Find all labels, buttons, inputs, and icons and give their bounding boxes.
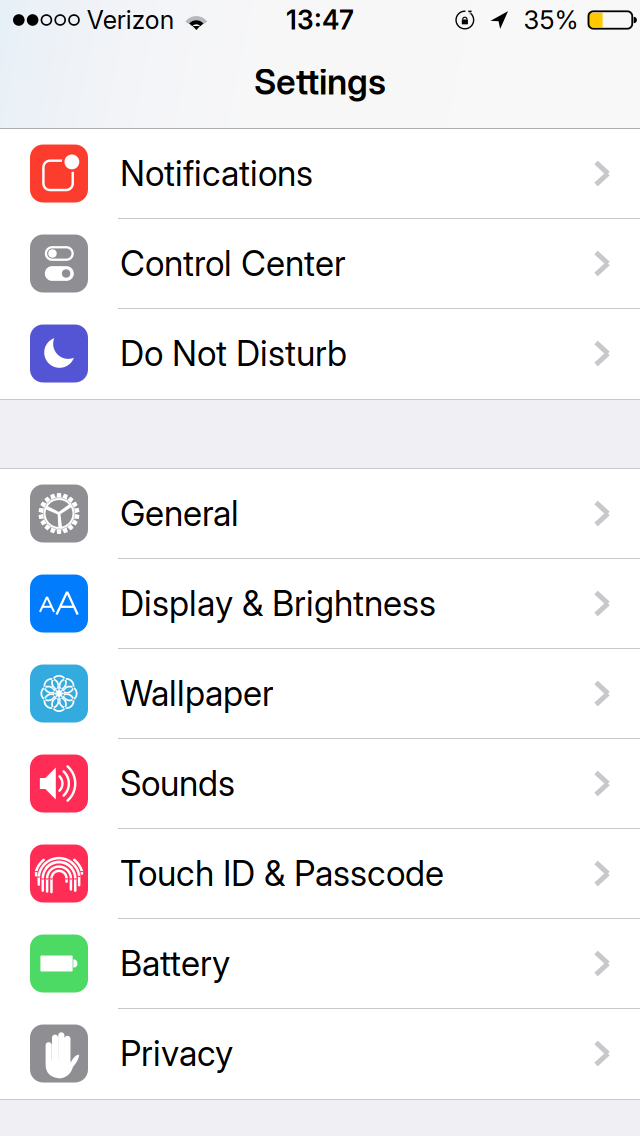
staticText: Privacy — [120, 1033, 233, 1074]
button[interactable]: Privacy — [0, 1009, 640, 1099]
staticText: Wallpaper — [120, 673, 274, 714]
staticText: 13:47 — [286, 4, 354, 36]
staticText: Verizon — [87, 5, 175, 35]
button[interactable]: Control Center — [0, 219, 640, 309]
staticText: Touch ID & Passcode — [120, 853, 444, 894]
button[interactable]: Sounds — [0, 739, 640, 829]
staticText: Control Center — [120, 243, 346, 284]
button[interactable]: Do Not Disturb — [0, 309, 640, 399]
staticText: Notifications — [120, 153, 313, 194]
button[interactable]: Display & Brightness — [0, 559, 640, 649]
staticText: Do Not Disturb — [120, 333, 347, 374]
button[interactable]: Touch ID & Passcode — [0, 829, 640, 919]
button[interactable]: General — [0, 469, 640, 559]
staticText: Settings — [254, 61, 386, 103]
button[interactable]: Battery — [0, 919, 640, 1009]
staticText: Display & Brightness — [120, 583, 436, 624]
button[interactable]: Notifications — [0, 129, 640, 219]
button[interactable]: Wallpaper — [0, 649, 640, 739]
staticText: 35% — [524, 4, 579, 35]
staticText: General — [120, 493, 239, 534]
staticText: Battery — [120, 943, 230, 984]
staticText: Sounds — [120, 763, 235, 804]
